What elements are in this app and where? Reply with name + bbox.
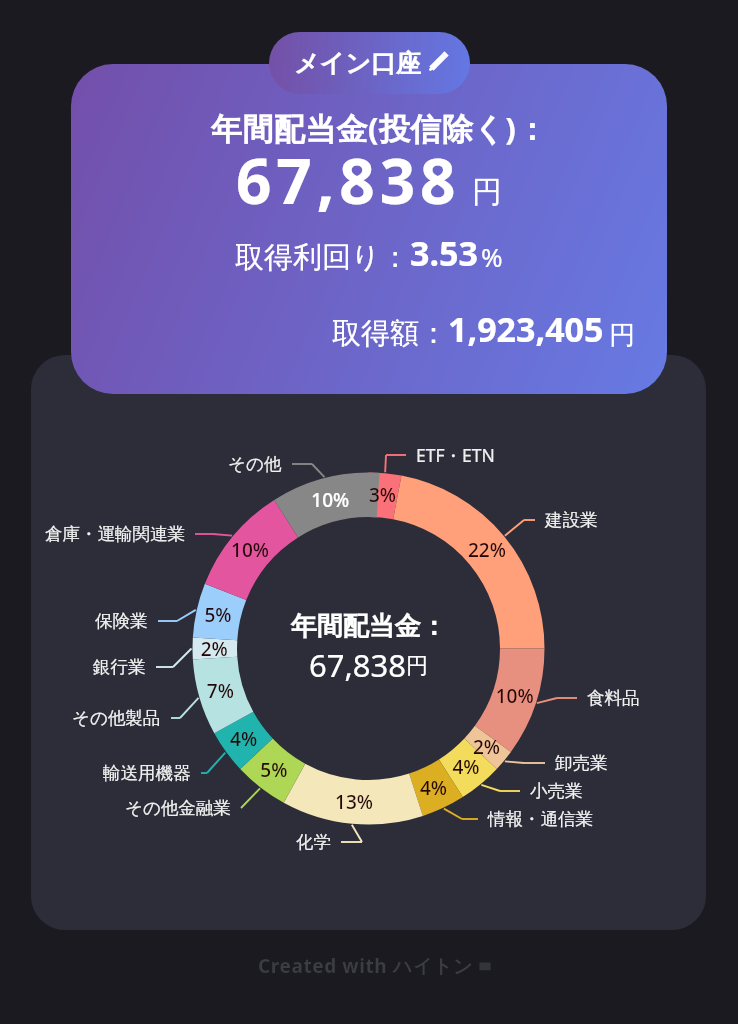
staticText: 1,923,405 bbox=[448, 306, 604, 352]
button[interactable]: 年間配当金(投信除く)： bbox=[71, 64, 667, 394]
button[interactable]: メイン口座 bbox=[269, 32, 470, 94]
staticText: Created with ハイトン bbox=[258, 953, 474, 979]
staticText: 67,838 bbox=[236, 138, 461, 222]
staticText: 3.53 bbox=[410, 230, 478, 276]
staticText: 取得利回り： bbox=[235, 239, 410, 276]
staticText: 円 bbox=[472, 173, 502, 211]
staticText: メイン口座 bbox=[294, 48, 421, 79]
staticText: 取得額： bbox=[332, 315, 448, 352]
staticText: 円 bbox=[609, 319, 635, 352]
staticText: 年間配当金(投信除く)： bbox=[211, 107, 548, 149]
staticText: % bbox=[481, 239, 503, 274]
